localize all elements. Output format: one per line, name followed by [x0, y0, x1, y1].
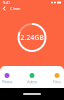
- button[interactable]: Photos: [1, 73, 13, 84]
- staticText: Videos: [26, 79, 37, 84]
- staticText: Clean: [10, 6, 21, 11]
- button[interactable]: Videos: [26, 73, 38, 84]
- staticText: Files: [53, 79, 61, 84]
- button[interactable]: Files: [51, 73, 63, 84]
- staticText: 2.24GB: [20, 33, 43, 42]
- staticText: 9:41: [3, 0, 10, 5]
- button[interactable]: Back: [1, 5, 8, 12]
- staticText: Photos: [1, 79, 12, 84]
